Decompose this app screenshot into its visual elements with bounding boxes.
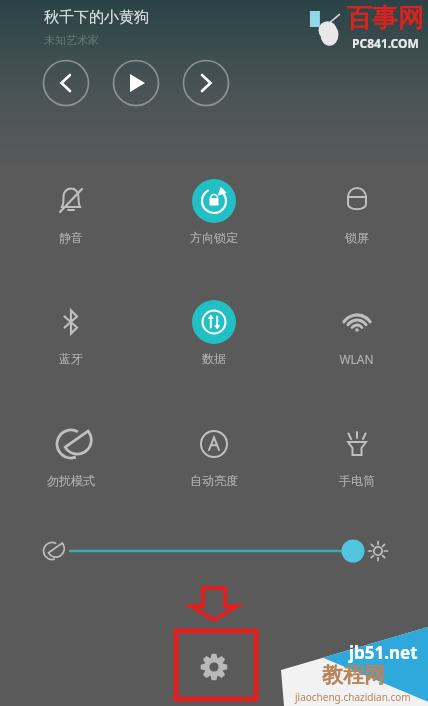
staticText: 锁屏 xyxy=(345,230,369,245)
button[interactable]: Brightness slider xyxy=(0,528,428,574)
button[interactable]: 手电筒 xyxy=(285,421,428,488)
button[interactable]: 蓝牙 xyxy=(0,299,142,366)
button[interactable]: Settings xyxy=(187,640,241,694)
button[interactable]: 静音 xyxy=(0,178,142,245)
button[interactable]: WLAN xyxy=(285,299,428,367)
staticText: 数据 xyxy=(202,351,226,366)
staticText: jiaocheng.chazidian.com xyxy=(295,690,411,704)
staticText: jb51.net xyxy=(349,641,418,664)
button[interactable]: Play xyxy=(112,59,160,107)
staticText: 蓝牙 xyxy=(59,351,83,366)
button[interactable]: 勿扰模式 xyxy=(0,421,142,488)
staticText: WLAN xyxy=(339,351,374,367)
button[interactable]: Previous track xyxy=(42,59,90,107)
staticText: 未知艺术家 xyxy=(44,33,99,47)
staticText: 方向锁定 xyxy=(190,230,238,245)
staticText: 百事网 xyxy=(346,2,424,35)
button[interactable]: 锁屏 xyxy=(285,178,428,245)
staticText: PC841.COM xyxy=(352,35,419,51)
staticText: 手电筒 xyxy=(339,473,375,488)
button[interactable]: 数据 xyxy=(142,299,285,366)
staticText: 教程网 xyxy=(322,662,385,688)
button[interactable]: Next track xyxy=(182,59,230,107)
button[interactable]: 方向锁定 xyxy=(142,178,285,245)
staticText: 自动亮度 xyxy=(190,473,238,488)
button[interactable]: 自动亮度 xyxy=(142,421,285,488)
staticText: 勿扰模式 xyxy=(47,473,95,488)
staticText: 静音 xyxy=(59,230,83,245)
staticText: 秋千下的小黄狗 xyxy=(44,8,149,27)
